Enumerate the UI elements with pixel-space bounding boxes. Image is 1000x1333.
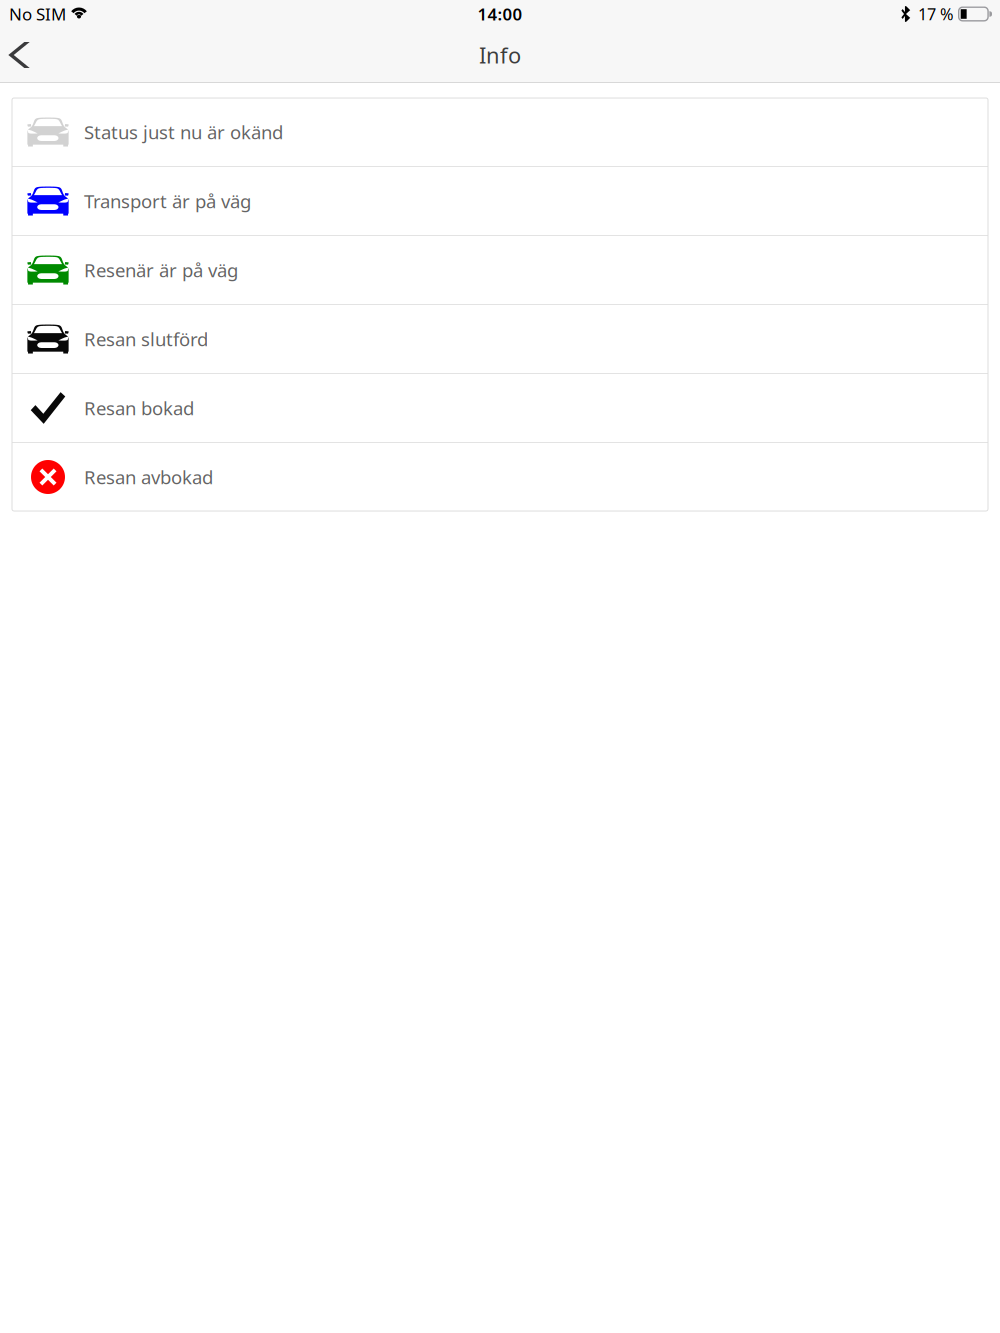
button[interactable]: Transport är på väg — [12, 167, 988, 235]
staticText: Resan slutförd — [84, 326, 208, 352]
button[interactable]: Resan slutförd — [12, 305, 988, 373]
staticText: 14:00 — [477, 3, 522, 25]
staticText: 17 % — [918, 3, 954, 25]
button[interactable]: Resan bokad — [12, 374, 988, 442]
button[interactable]: Resan avbokad — [12, 443, 988, 511]
staticText: Info — [479, 40, 521, 70]
staticText: Status just nu är okänd — [84, 119, 283, 145]
button[interactable]: Back — [0, 29, 43, 81]
button[interactable]: Resenär är på väg — [12, 236, 988, 304]
staticText: Resan bokad — [84, 395, 194, 421]
staticText: Resenär är på väg — [84, 257, 238, 283]
staticText: No SIM — [9, 2, 66, 26]
button[interactable]: Status just nu är okänd — [12, 98, 988, 166]
staticText: Resan avbokad — [84, 464, 213, 490]
staticText: Transport är på väg — [84, 188, 251, 214]
